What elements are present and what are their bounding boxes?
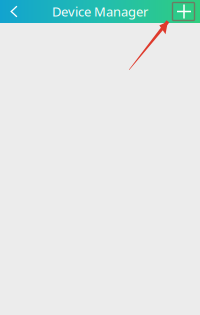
button[interactable]: Add device [172, 0, 196, 23]
staticText: Device Manager [52, 3, 148, 20]
button[interactable]: Back [2, 0, 26, 23]
